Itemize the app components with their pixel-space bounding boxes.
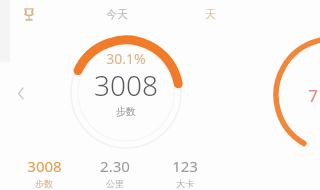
button[interactable]: 天 (196, 4, 224, 24)
staticText: 天 (205, 7, 216, 21)
staticText: 3008 (94, 66, 158, 100)
staticText: 123 (172, 156, 198, 176)
staticText: 今天 (106, 7, 128, 21)
button[interactable]: 3008 (8, 156, 80, 188)
staticText: 3008 (27, 156, 62, 176)
staticText: 步数 (116, 105, 136, 118)
button[interactable]: 123 (150, 156, 220, 188)
button[interactable]: 今天 (97, 4, 137, 24)
staticText: 2.30 (100, 156, 130, 176)
staticText: 步数 (35, 178, 53, 188)
staticText: 大卡 (176, 178, 194, 188)
button[interactable]: Achievements (18, 4, 40, 26)
button[interactable]: 2.30 (80, 156, 150, 188)
staticText: 30.1% (106, 49, 146, 67)
staticText: 7 (308, 84, 318, 107)
staticText: 公里 (106, 178, 124, 188)
button[interactable]: Previous (12, 83, 30, 103)
